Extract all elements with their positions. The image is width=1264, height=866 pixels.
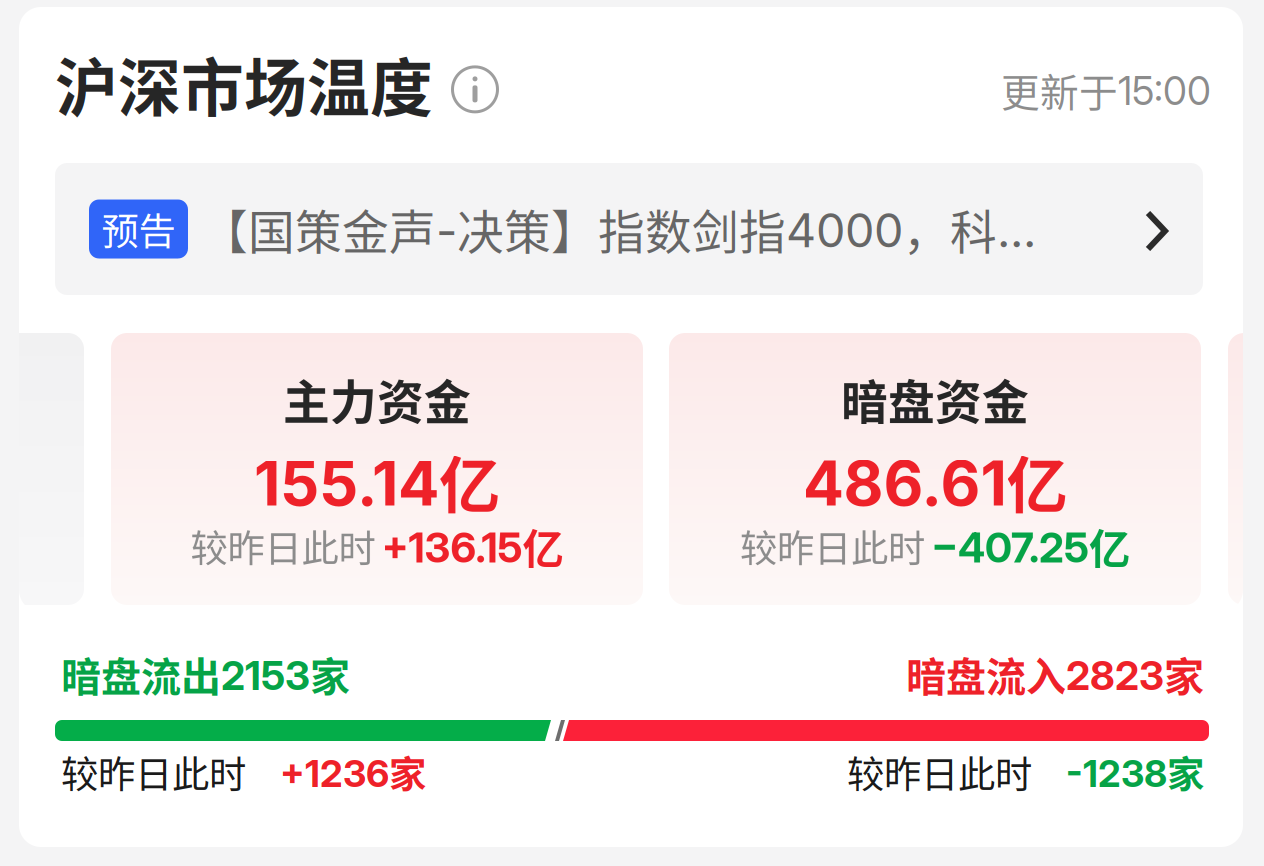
staticText: 较昨日此时 (847, 745, 1032, 799)
button[interactable]: 市场温度说明 (433, 53, 517, 113)
staticText: 更新于15:00 (1001, 62, 1211, 118)
staticText: 暗盘资金 (841, 365, 1029, 433)
staticText: 486.61亿 (802, 437, 1067, 525)
button[interactable]: 预告 (55, 163, 1203, 295)
staticText: 暗盘流出2153家 (61, 645, 350, 703)
staticText: +136.15亿 (381, 516, 563, 576)
staticText: 155.14亿 (254, 437, 500, 525)
staticText: 【国策金声-决策】指数剑指4000，科... (201, 195, 1036, 263)
staticText: 主力资金 (283, 365, 471, 433)
staticText: 预告 (101, 202, 175, 256)
staticText: 较昨日此时 (61, 745, 246, 799)
staticText: 较昨日此时 (740, 519, 925, 573)
staticText: 较昨日此时 (190, 519, 375, 573)
staticText: -1238家 (1066, 745, 1204, 799)
staticText: +1236家 (280, 745, 426, 799)
staticText: 暗盘流入2823家 (906, 645, 1204, 703)
staticText: 沪深市场温度 (55, 38, 433, 129)
staticText: −407.25亿 (931, 516, 1130, 576)
